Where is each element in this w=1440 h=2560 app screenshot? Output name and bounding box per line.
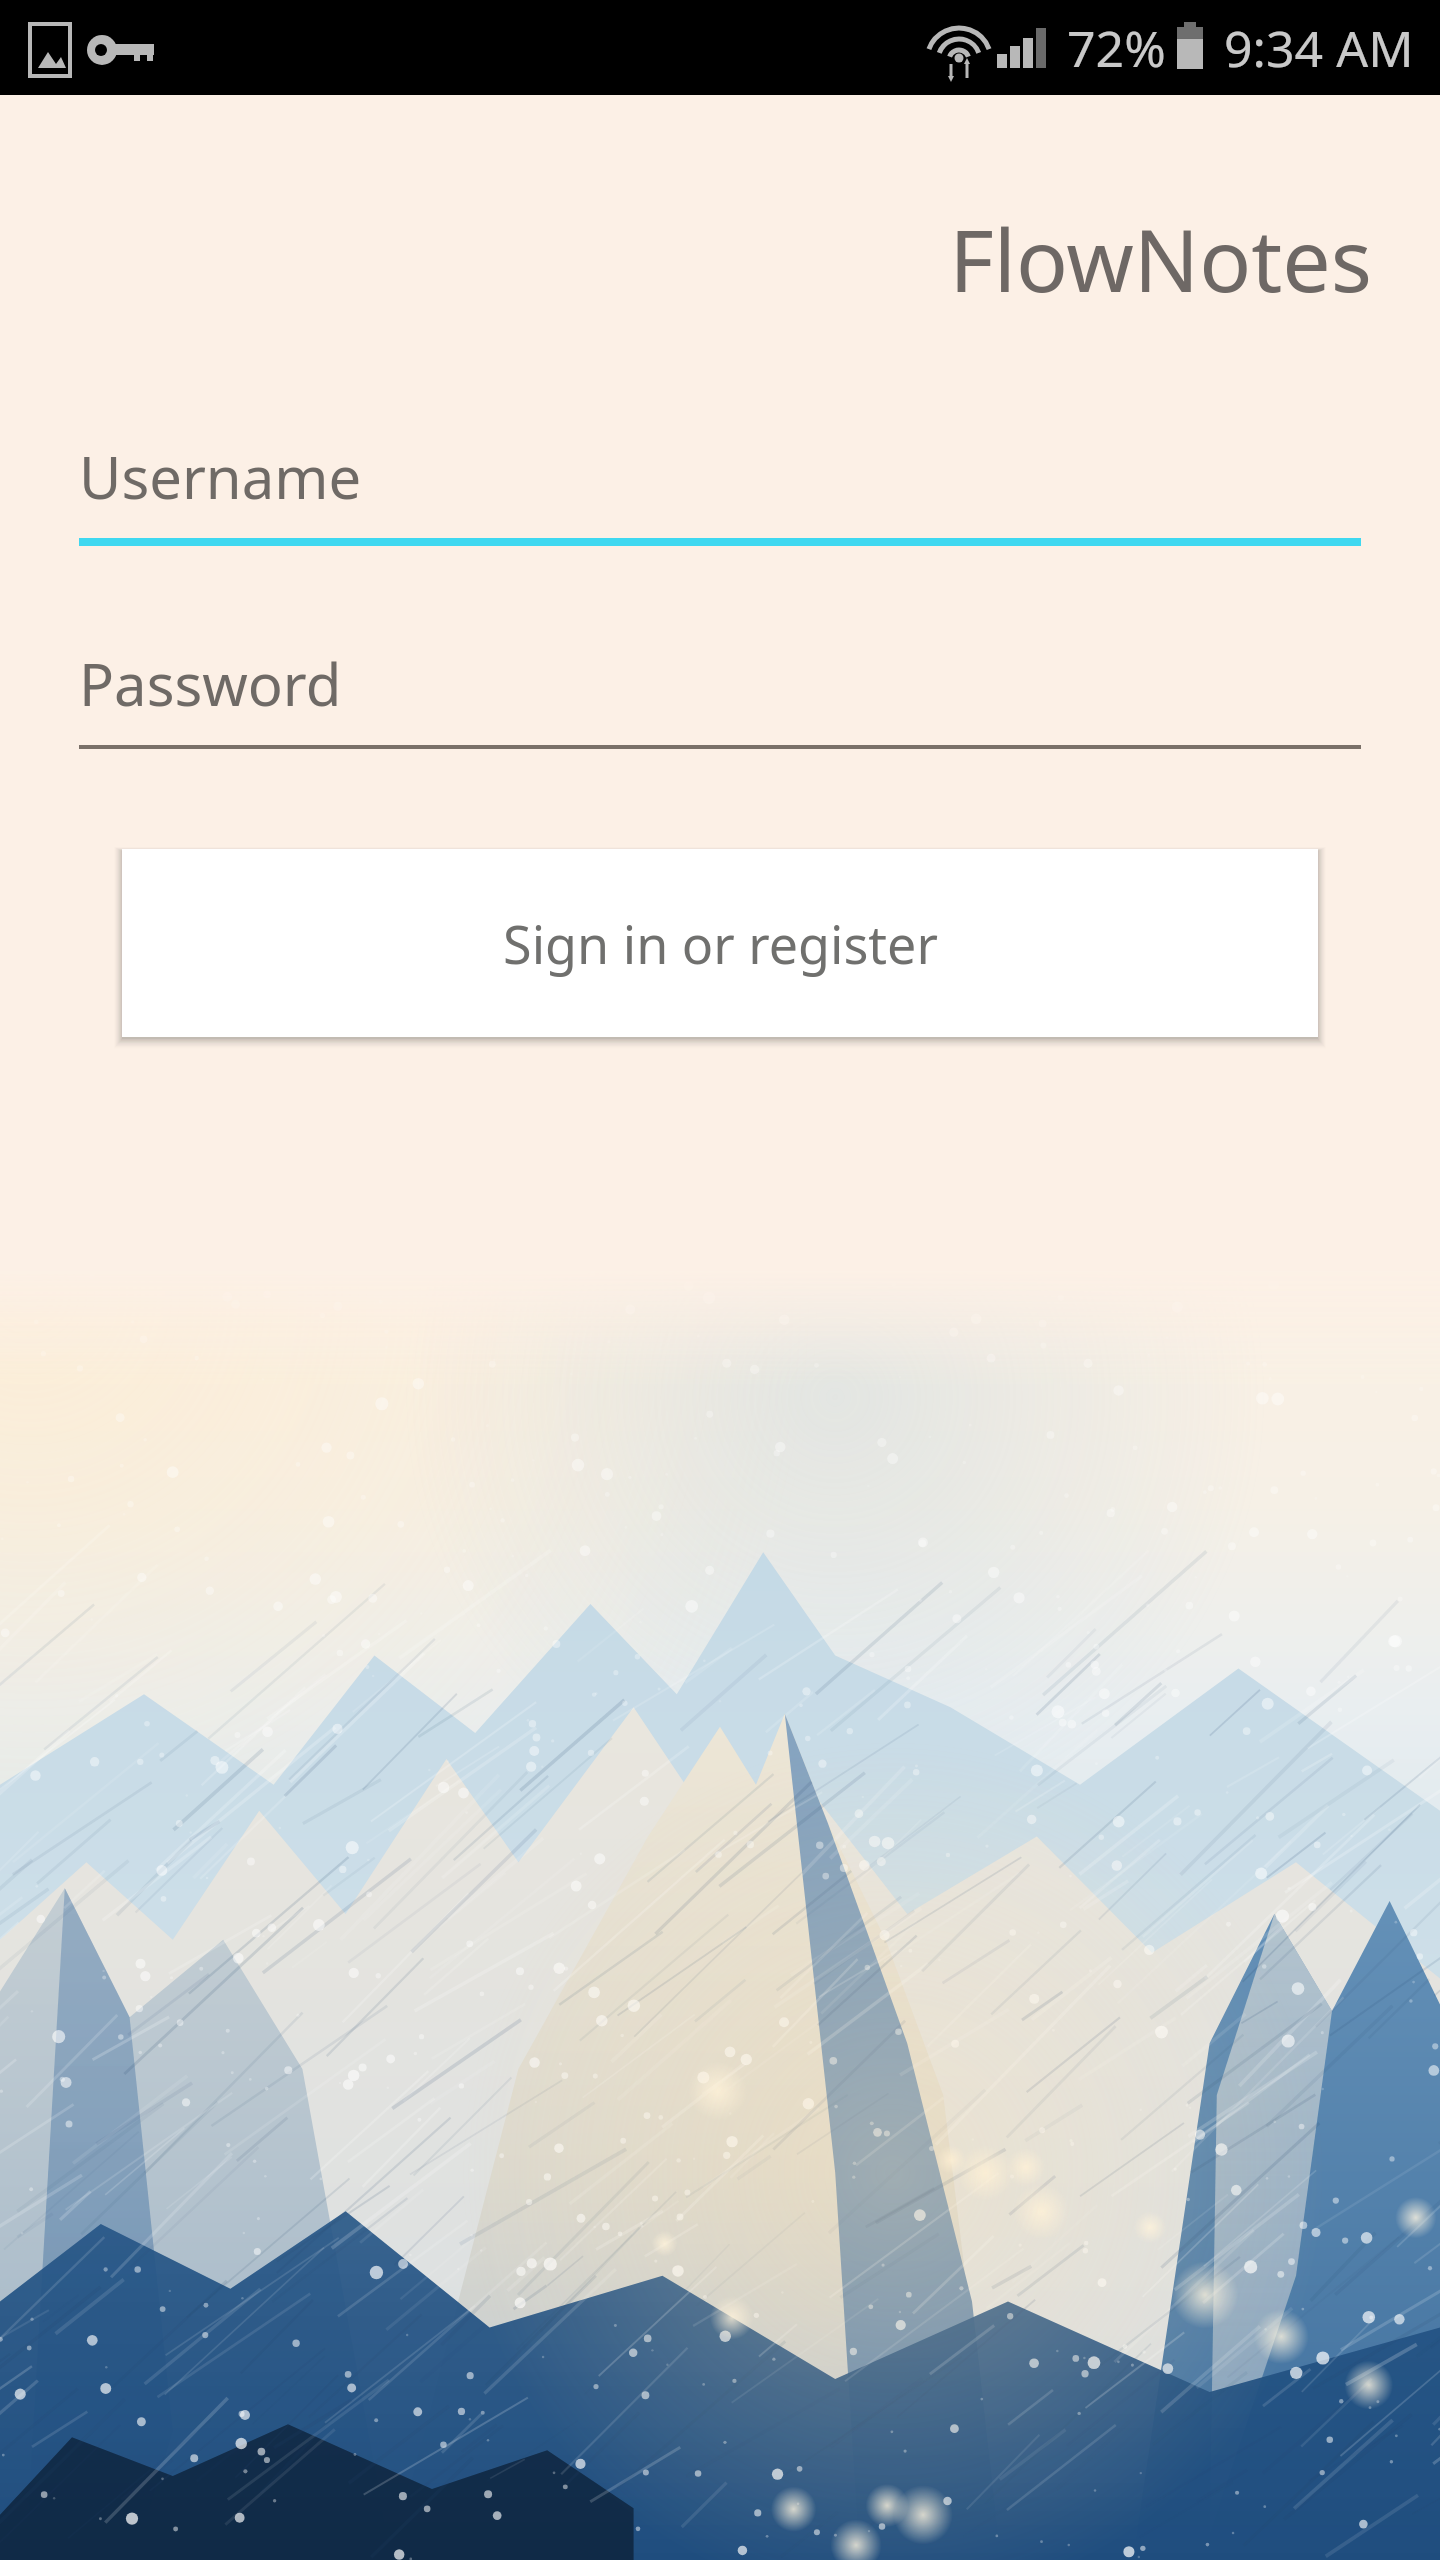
staticText: 72% (1067, 14, 1166, 82)
staticText: FlowNotes (0, 200, 1372, 317)
staticText: Sign in or register (503, 908, 938, 979)
staticText: Username (79, 437, 362, 516)
button[interactable]: Sign in or register (122, 849, 1318, 1037)
button[interactable]: Password field (79, 644, 1361, 749)
staticText: Password (79, 644, 342, 723)
button[interactable]: Username field (79, 437, 1361, 546)
staticText: 9:34 AM (1224, 14, 1414, 82)
